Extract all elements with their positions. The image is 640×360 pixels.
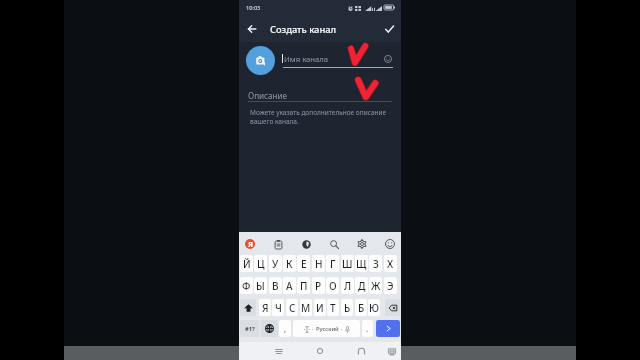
- button[interactable]: К: [283, 255, 296, 272]
- staticText: Ь: [344, 301, 351, 315]
- staticText: Л: [344, 279, 352, 293]
- button[interactable]: П: [297, 277, 310, 294]
- button[interactable]: Т: [327, 299, 339, 316]
- staticText: 10:03: [246, 4, 261, 12]
- staticText: #1?: [245, 325, 255, 333]
- staticText: Н: [315, 257, 323, 271]
- button[interactable]: Space: [293, 320, 360, 337]
- button[interactable]: Б: [355, 299, 367, 316]
- staticText: К: [286, 257, 293, 271]
- button[interactable]: Н: [312, 255, 325, 272]
- button[interactable]: Л: [341, 277, 354, 294]
- button[interactable]: Я: [259, 299, 271, 316]
- staticText: В: [272, 279, 279, 293]
- staticText: Х: [387, 257, 394, 271]
- button[interactable]: Backspace: [385, 299, 400, 316]
- staticText: У: [272, 257, 279, 271]
- button[interactable]: Clipboard: [271, 237, 285, 251]
- button[interactable]: Р: [312, 277, 325, 294]
- button[interactable]: Emoji: [382, 53, 394, 65]
- button[interactable]: Э: [384, 277, 397, 294]
- button[interactable]: Ц: [254, 255, 267, 272]
- button[interactable]: Е: [297, 255, 310, 272]
- button[interactable]: А: [283, 277, 296, 294]
- button[interactable]: Home: [313, 344, 327, 358]
- button[interactable]: Ч: [272, 299, 284, 316]
- staticText: Ы: [256, 279, 265, 293]
- button[interactable]: Change language: [261, 320, 278, 337]
- staticText: З: [373, 257, 379, 271]
- button[interactable]: Back: [354, 344, 368, 358]
- button[interactable]: Enter: [376, 320, 400, 337]
- button[interactable]: У: [269, 255, 282, 272]
- staticText: Ц: [257, 257, 265, 271]
- staticText: Можете указать дополнительное описание в…: [250, 108, 389, 126]
- staticText: Т: [330, 301, 336, 315]
- staticText: Р: [315, 279, 322, 293]
- button[interactable]: Ж: [369, 277, 382, 294]
- button[interactable]: О: [326, 277, 339, 294]
- staticText: ·: [341, 325, 343, 333]
- button[interactable]: Settings: [355, 237, 369, 251]
- button[interactable]: Symbols: [240, 320, 259, 337]
- staticText: П: [300, 279, 308, 293]
- button[interactable]: Ш: [341, 255, 354, 272]
- button[interactable]: Done: [380, 20, 398, 38]
- button[interactable]: Й: [240, 255, 253, 272]
- button[interactable]: З: [369, 255, 382, 272]
- staticText: И: [316, 301, 324, 315]
- staticText: Создать канал: [270, 23, 337, 36]
- button[interactable]: Set channel photo: [246, 46, 275, 75]
- button[interactable]: Ь: [341, 299, 353, 316]
- staticText: Д: [358, 279, 366, 293]
- button[interactable]: Yandex assistant: [244, 238, 256, 250]
- button[interactable]: М: [300, 299, 312, 316]
- button[interactable]: Ю: [368, 299, 380, 316]
- button[interactable]: ,: [279, 320, 291, 337]
- staticText: Ж: [371, 279, 381, 293]
- staticText: Э: [387, 279, 394, 293]
- staticText: Ш: [342, 257, 353, 271]
- staticText: М: [301, 301, 311, 315]
- staticText: С: [289, 301, 296, 315]
- staticText: Я: [248, 239, 253, 249]
- staticText: О: [329, 279, 337, 293]
- button[interactable]: И: [314, 299, 326, 316]
- staticText: .: [366, 323, 369, 334]
- staticText: ,: [284, 323, 287, 334]
- staticText: Имя канала: [284, 54, 329, 64]
- button[interactable]: Щ: [355, 255, 368, 272]
- button[interactable]: Ы: [254, 277, 267, 294]
- button[interactable]: Recent apps: [272, 344, 286, 358]
- staticText: Ю: [369, 301, 380, 315]
- staticText: ·: [312, 325, 314, 333]
- button[interactable]: Г: [326, 255, 339, 272]
- staticText: А: [286, 279, 293, 293]
- button[interactable]: Search: [327, 237, 341, 251]
- staticText: Ф: [242, 279, 251, 293]
- button[interactable]: Emoji: [383, 237, 397, 251]
- staticText: Описание: [248, 90, 288, 101]
- staticText: Русский: [316, 325, 339, 333]
- staticText: Б: [358, 301, 365, 315]
- staticText: Е: [301, 257, 307, 271]
- button[interactable]: Д: [355, 277, 368, 294]
- button[interactable]: Translate: [299, 237, 313, 251]
- staticText: Я: [262, 301, 269, 315]
- staticText: Й: [243, 257, 251, 271]
- button[interactable]: Х: [384, 255, 397, 272]
- button[interactable]: .: [362, 320, 373, 337]
- staticText: Г: [330, 257, 336, 271]
- staticText: Щ: [356, 257, 367, 271]
- button[interactable]: Back: [242, 19, 262, 39]
- button[interactable]: Hide keyboard: [385, 344, 399, 358]
- button[interactable]: Shift: [240, 299, 256, 316]
- button[interactable]: Ф: [240, 277, 253, 294]
- button[interactable]: В: [269, 277, 282, 294]
- button[interactable]: С: [286, 299, 298, 316]
- staticText: Ч: [275, 301, 282, 315]
